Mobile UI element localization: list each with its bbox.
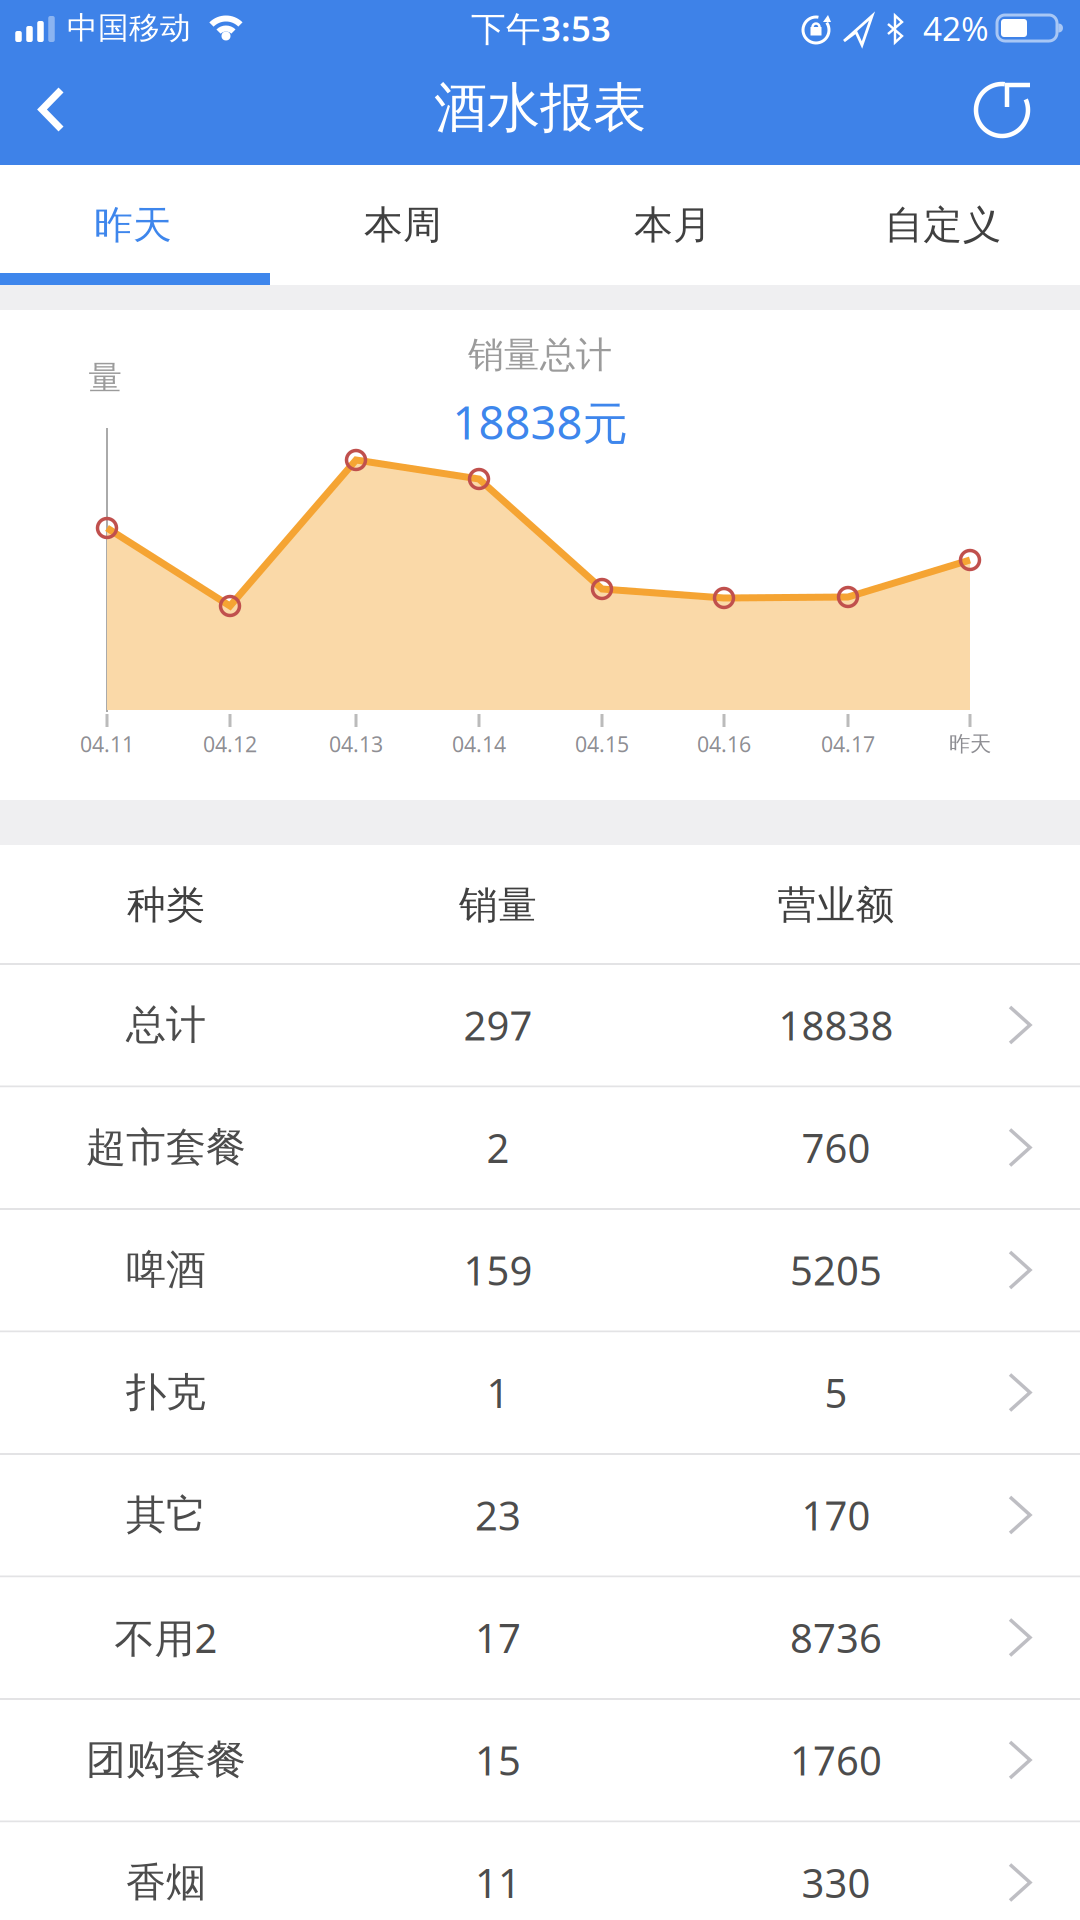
staticText: 扑克 xyxy=(126,1368,206,1417)
staticText: 8736 xyxy=(790,1611,882,1664)
staticText: 04.13 xyxy=(329,730,383,758)
staticText: 42% xyxy=(923,6,989,50)
staticText: 5205 xyxy=(790,1243,882,1296)
staticText: 04.16 xyxy=(697,730,751,758)
staticText: 本月 xyxy=(634,201,712,249)
staticText: 17 xyxy=(475,1611,521,1664)
staticText: 170 xyxy=(801,1488,870,1541)
staticText: 销量 xyxy=(459,881,537,929)
staticText: 超市套餐 xyxy=(86,1123,246,1172)
staticText: 04.14 xyxy=(452,730,506,758)
staticText: 297 xyxy=(463,998,532,1051)
staticText: 其它 xyxy=(126,1490,206,1539)
staticText: 159 xyxy=(463,1243,532,1296)
staticText: 团购套餐 xyxy=(86,1735,246,1784)
staticText: 总计 xyxy=(126,1000,206,1049)
staticText: 18838元 xyxy=(452,392,627,452)
staticText: 量 xyxy=(88,357,121,398)
staticText: 5 xyxy=(824,1366,847,1419)
staticText: 香烟 xyxy=(126,1858,206,1907)
staticText: 04.15 xyxy=(575,730,629,758)
staticText: 760 xyxy=(801,1121,870,1174)
staticText: 330 xyxy=(801,1856,870,1909)
staticText: 销量总计 xyxy=(468,333,612,377)
staticText: 中国移动 xyxy=(67,9,191,47)
staticText: 种类 xyxy=(127,881,205,929)
staticText: 本周 xyxy=(364,201,442,249)
staticText: 营业额 xyxy=(777,881,894,929)
staticText: 1760 xyxy=(790,1733,882,1786)
staticText: 2 xyxy=(486,1121,509,1174)
staticText: 04.11 xyxy=(80,730,134,758)
staticText: 11 xyxy=(475,1856,521,1909)
staticText: 自定义 xyxy=(884,201,1001,249)
staticText: 23 xyxy=(475,1488,521,1541)
staticText: 1 xyxy=(486,1366,509,1419)
staticText: 15 xyxy=(475,1733,521,1786)
staticText: 04.17 xyxy=(821,730,875,758)
staticText: 不用2 xyxy=(114,1611,217,1664)
staticText: 下午3:53 xyxy=(471,5,611,51)
staticText: 啤酒 xyxy=(126,1245,206,1294)
staticText: 18838 xyxy=(778,998,893,1051)
staticText: 昨天 xyxy=(949,731,991,757)
staticText: 昨天 xyxy=(94,201,172,249)
staticText: 04.12 xyxy=(203,730,257,758)
staticText: 酒水报表 xyxy=(434,75,646,141)
